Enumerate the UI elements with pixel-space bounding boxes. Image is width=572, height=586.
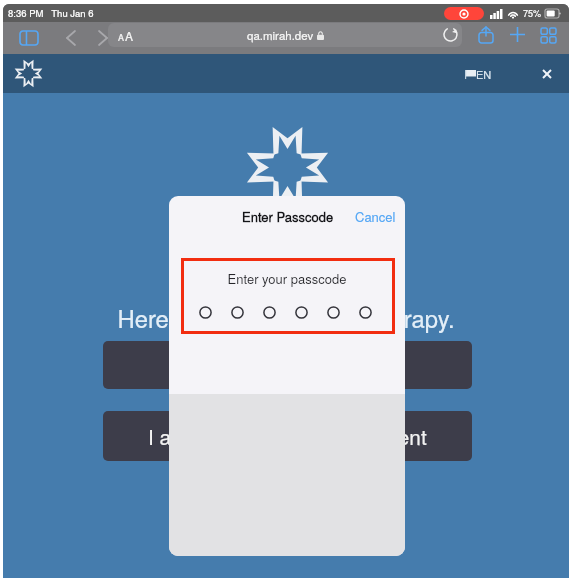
- staticText: 75%: [523, 7, 542, 20]
- staticText: A: [118, 31, 125, 44]
- staticText: qa.mirah.dev: [247, 27, 314, 43]
- staticText: I already have an appointment: [148, 421, 427, 451]
- staticText: Enter your passcode: [169, 269, 405, 288]
- staticText: Enter Passcode: [242, 207, 334, 226]
- staticText: Cancel: [355, 207, 396, 226]
- button[interactable]: Sidebar: [19, 28, 39, 48]
- staticText: EN: [476, 66, 492, 82]
- button[interactable]: Back: [61, 28, 81, 48]
- button[interactable]: A: [118, 27, 134, 44]
- button[interactable]: New tab: [507, 24, 527, 44]
- button[interactable]: I already have an appointment: [103, 411, 472, 461]
- button[interactable]: A: [108, 23, 462, 47]
- button[interactable]: Show tabs: [538, 25, 558, 45]
- button[interactable]: EN: [465, 66, 492, 82]
- button[interactable]: Mirah home: [14, 59, 43, 88]
- button[interactable]: Forward: [93, 28, 113, 48]
- staticText: A: [125, 27, 134, 44]
- button[interactable]: Share: [475, 23, 497, 45]
- staticText: 8:36 PM Thu Jan 6: [8, 6, 94, 20]
- button[interactable]: Cancel: [355, 207, 396, 226]
- button[interactable]: Reload: [440, 24, 460, 44]
- button[interactable]: Close: [537, 64, 557, 84]
- staticText: Here you can start your therapy.: [3, 301, 569, 335]
- button[interactable]: I am a new patient: [103, 341, 472, 389]
